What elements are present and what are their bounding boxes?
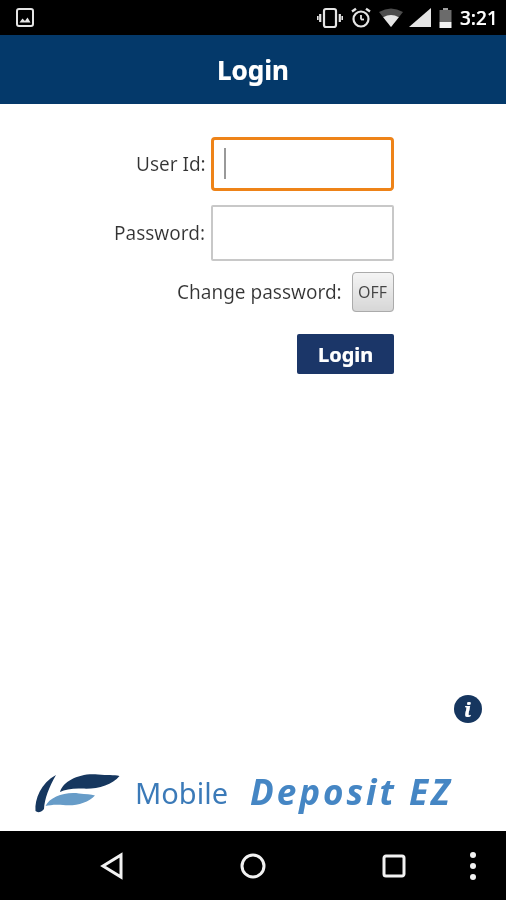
- staticText: Deposit EZ: [250, 768, 453, 816]
- staticText: Login: [318, 341, 374, 368]
- staticText: User Id:: [136, 151, 206, 177]
- button[interactable]: OFF: [352, 272, 394, 312]
- button[interactable]: [233, 845, 273, 885]
- button[interactable]: [211, 205, 394, 261]
- staticText: Password:: [114, 220, 206, 246]
- button[interactable]: [211, 137, 394, 191]
- button[interactable]: [92, 845, 132, 885]
- staticText: i: [464, 696, 472, 723]
- staticText: Login: [217, 52, 289, 87]
- staticText: Mobile: [135, 773, 229, 812]
- button[interactable]: i: [454, 695, 482, 723]
- staticText: OFF: [358, 281, 388, 303]
- button[interactable]: Login: [297, 334, 394, 374]
- button[interactable]: [374, 845, 414, 885]
- staticText: 3:21: [460, 5, 498, 31]
- button[interactable]: [453, 845, 493, 885]
- staticText: Change password:: [177, 279, 342, 305]
